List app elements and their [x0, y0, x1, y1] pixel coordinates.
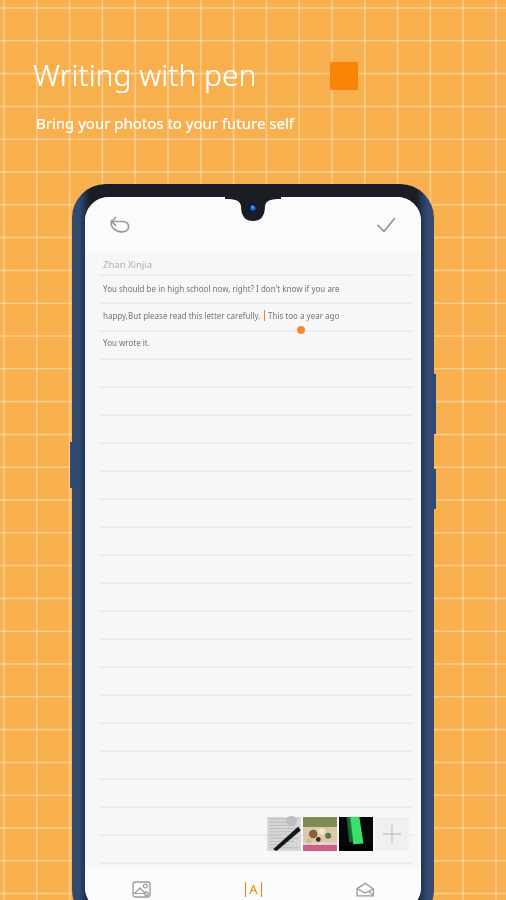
staticText: happy,But please read this letter carefu…	[103, 310, 261, 321]
button[interactable]: Mail	[309, 867, 421, 900]
button[interactable]: Photos	[85, 867, 197, 900]
staticText: You wrote it.	[103, 337, 150, 348]
staticText: Writing with pen	[33, 54, 257, 95]
staticText: A	[249, 880, 258, 898]
staticText: Bring your photos to your future self	[36, 113, 294, 133]
button[interactable]: A	[197, 867, 309, 900]
staticText: This too a year ago	[268, 310, 340, 321]
button[interactable]: Photo 3	[339, 817, 373, 851]
button[interactable]: Photo 1	[267, 817, 301, 851]
button[interactable]: Done	[369, 208, 403, 242]
button[interactable]: Photo 2	[303, 817, 337, 851]
button[interactable]: Undo	[103, 208, 137, 242]
button[interactable]: Add photo	[375, 817, 409, 851]
staticText: You should be in high school now, right?…	[103, 283, 340, 294]
staticText: Zhan Xinjia	[103, 258, 153, 271]
